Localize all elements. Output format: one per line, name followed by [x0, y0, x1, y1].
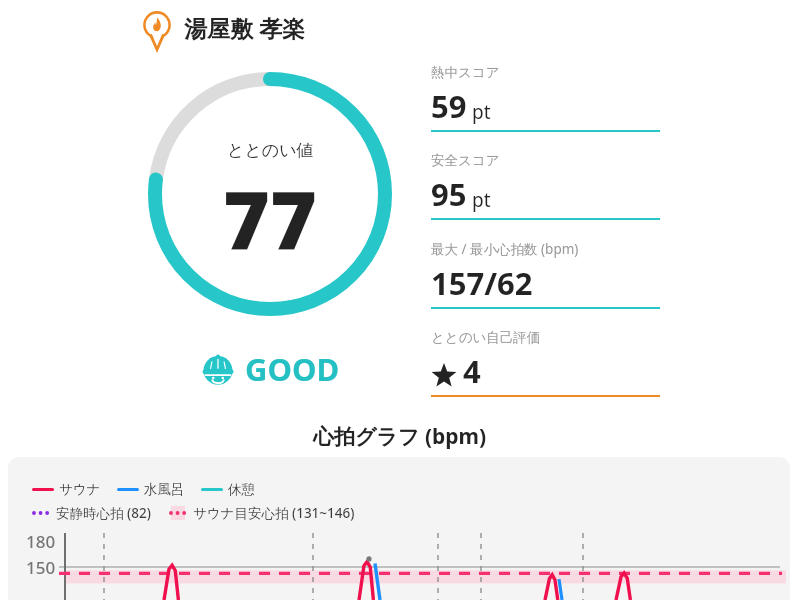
button[interactable]: Condition good	[198, 346, 342, 392]
staticText: 77	[223, 163, 317, 272]
staticText: 湯屋敷 孝楽	[184, 12, 305, 43]
staticText: 心拍グラフ (bpm)	[313, 422, 487, 451]
staticText: pt	[472, 187, 491, 213]
staticText: 150	[26, 556, 56, 579]
staticText: 水風呂	[144, 481, 185, 498]
staticText: 59	[431, 85, 467, 127]
staticText: 最大 / 最小心拍数 (bpm)	[431, 240, 579, 258]
button[interactable]: 湯屋敷 孝楽	[138, 8, 307, 46]
staticText: 157/62	[431, 262, 533, 304]
staticText: GOOD	[245, 348, 340, 390]
staticText: pt	[472, 99, 491, 125]
button[interactable]: 安全スコア	[431, 152, 660, 220]
staticText: 熱中スコア	[431, 64, 500, 81]
button[interactable]: 最大 / 最小心拍数 (bpm)	[431, 240, 660, 309]
staticText: 安静時心拍 (82)	[56, 504, 151, 522]
staticText: 4	[463, 350, 481, 392]
button[interactable]: ととのい自己評価	[431, 329, 660, 397]
button[interactable]: 熱中スコア	[431, 64, 660, 132]
staticText: ととのい自己評価	[431, 329, 541, 346]
staticText: サウナ目安心拍 (131~146)	[193, 504, 355, 522]
staticText: 安全スコア	[431, 152, 500, 169]
staticText: 180	[26, 530, 56, 553]
staticText: 休憩	[228, 481, 255, 498]
staticText: ととのい値	[227, 140, 314, 161]
staticText: 95	[431, 173, 467, 215]
staticText: サウナ	[59, 481, 101, 498]
other: Condition good	[200, 351, 236, 387]
